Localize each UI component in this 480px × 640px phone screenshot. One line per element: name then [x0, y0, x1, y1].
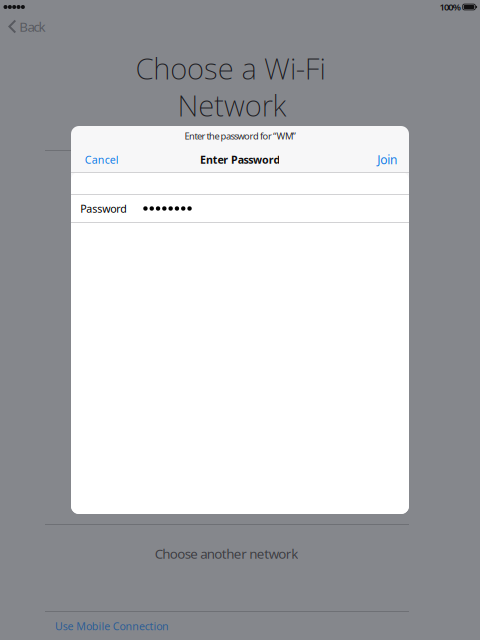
staticText: Cancel [85, 152, 119, 167]
staticText: Choose another network [155, 545, 298, 562]
button[interactable]: Use Mobile Connection [55, 612, 409, 640]
staticText: Enter Password [200, 152, 280, 167]
button[interactable]: Join [367, 148, 407, 170]
button[interactable]: Cancel [75, 148, 129, 170]
staticText: Join [377, 151, 397, 167]
staticText: Use Mobile Connection [55, 619, 169, 633]
staticText: 100% [439, 1, 461, 13]
staticText: Choose a Wi-Fi [135, 48, 325, 87]
staticText: Password [80, 201, 127, 216]
staticText: Enter the password for “WM” [184, 130, 295, 142]
staticText: Network [177, 85, 287, 124]
staticText: Back [19, 18, 46, 35]
button[interactable]: Back [0, 14, 56, 38]
